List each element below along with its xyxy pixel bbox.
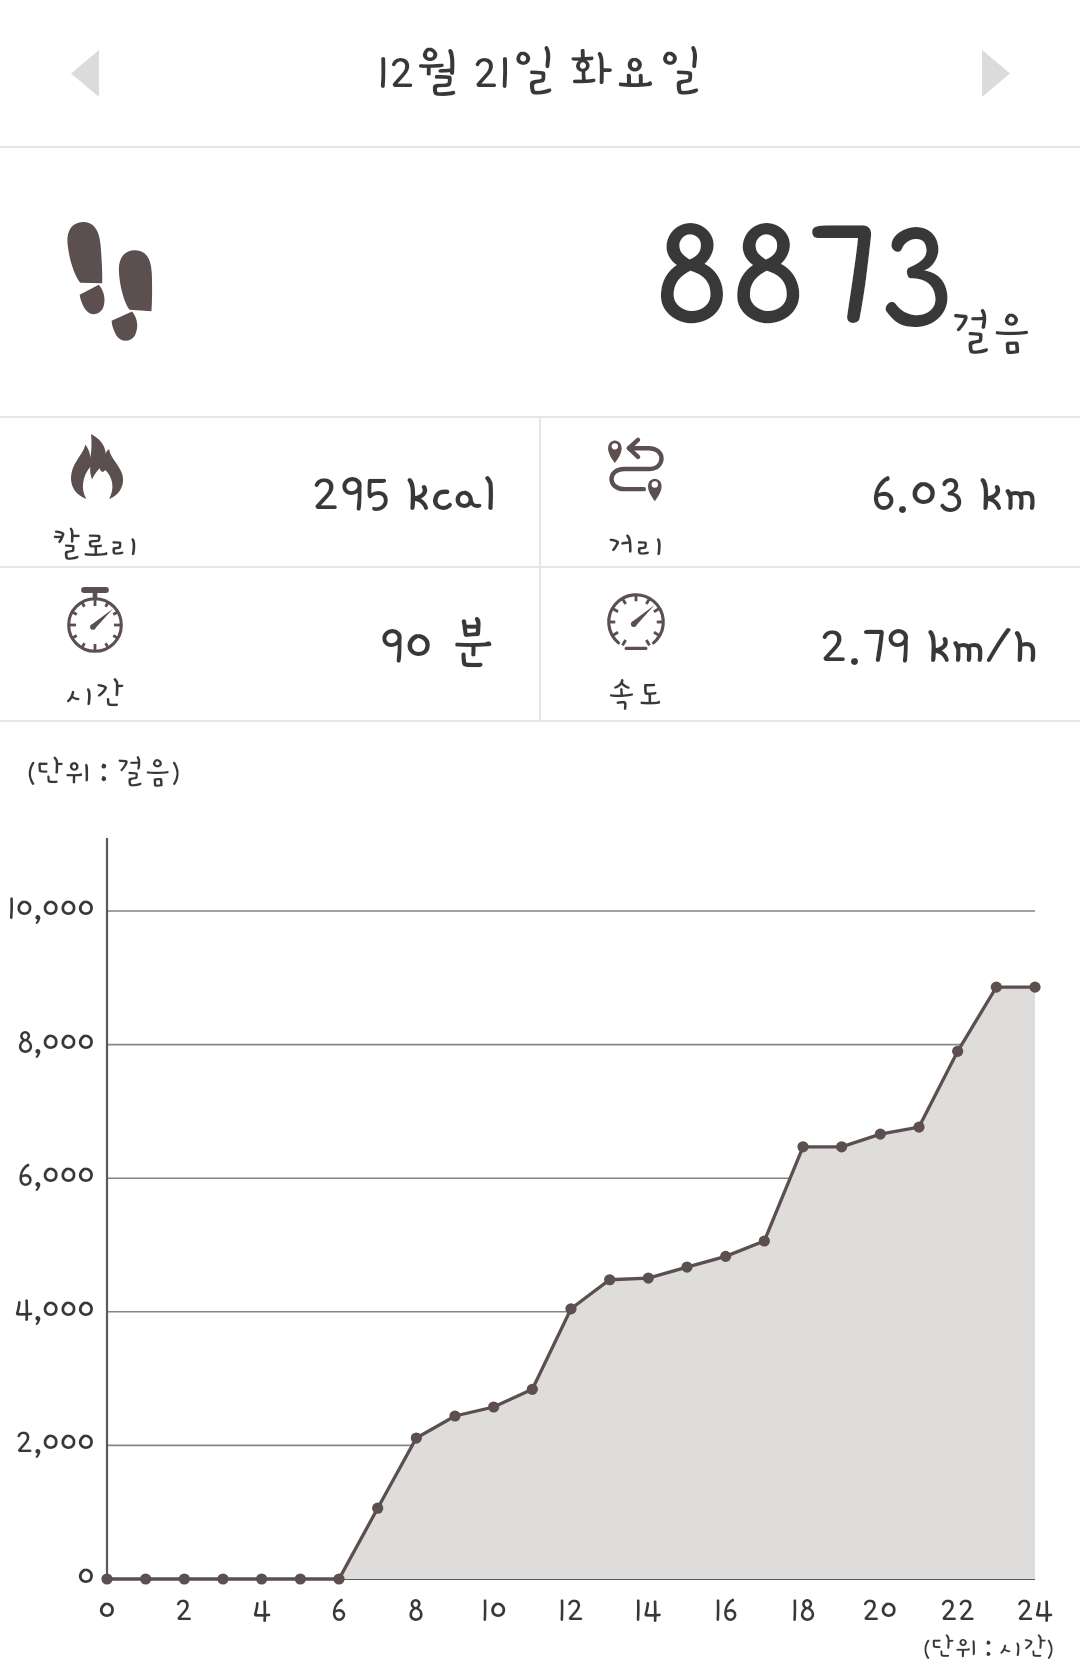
staticText: 20 [840,1590,920,1628]
staticText: 8 [376,1590,456,1628]
staticText: 295 kcal [312,462,497,522]
staticText: 시간 [25,677,165,713]
staticText: 10,000 [0,888,95,926]
button[interactable]: 칼로리 [0,418,539,566]
staticText: 거리 [566,527,706,563]
staticText: 속도 [566,677,706,713]
staticText: 18 [763,1590,843,1628]
staticText: 4,000 [0,1289,95,1327]
staticText: 2,000 [0,1422,95,1460]
staticText: 8873 [454,181,954,358]
staticText: 6.03 km [871,462,1038,522]
staticText: 걸음 [868,308,1032,358]
staticText: 6,000 [0,1155,95,1193]
staticText: (단위 : 시간) [923,1633,1054,1662]
button[interactable]: 거리 [541,418,1080,566]
staticText: 24 [995,1590,1075,1628]
staticText: 2 [144,1590,224,1628]
staticText: 0 [0,1556,95,1594]
staticText: 6 [299,1590,379,1628]
staticText: 4 [222,1590,302,1628]
button[interactable]: Previous day [45,33,125,113]
staticText: 90 분 [380,614,497,674]
staticText: 10 [454,1590,534,1628]
button[interactable]: 속도 [541,568,1080,720]
staticText: 22 [918,1590,998,1628]
staticText: 0 [67,1590,147,1628]
staticText: 2.79 km/h [820,614,1038,674]
staticText: 16 [686,1590,766,1628]
staticText: 12 [531,1590,611,1628]
staticText: (단위 : 걸음) [27,755,180,789]
button[interactable]: Next day [956,33,1036,113]
staticText: 8,000 [0,1022,95,1060]
staticText: 칼로리 [26,527,166,563]
button[interactable]: 시간 [0,568,539,720]
staticText: 12월 21일 화요일 [377,44,703,99]
staticText: 14 [608,1590,688,1628]
